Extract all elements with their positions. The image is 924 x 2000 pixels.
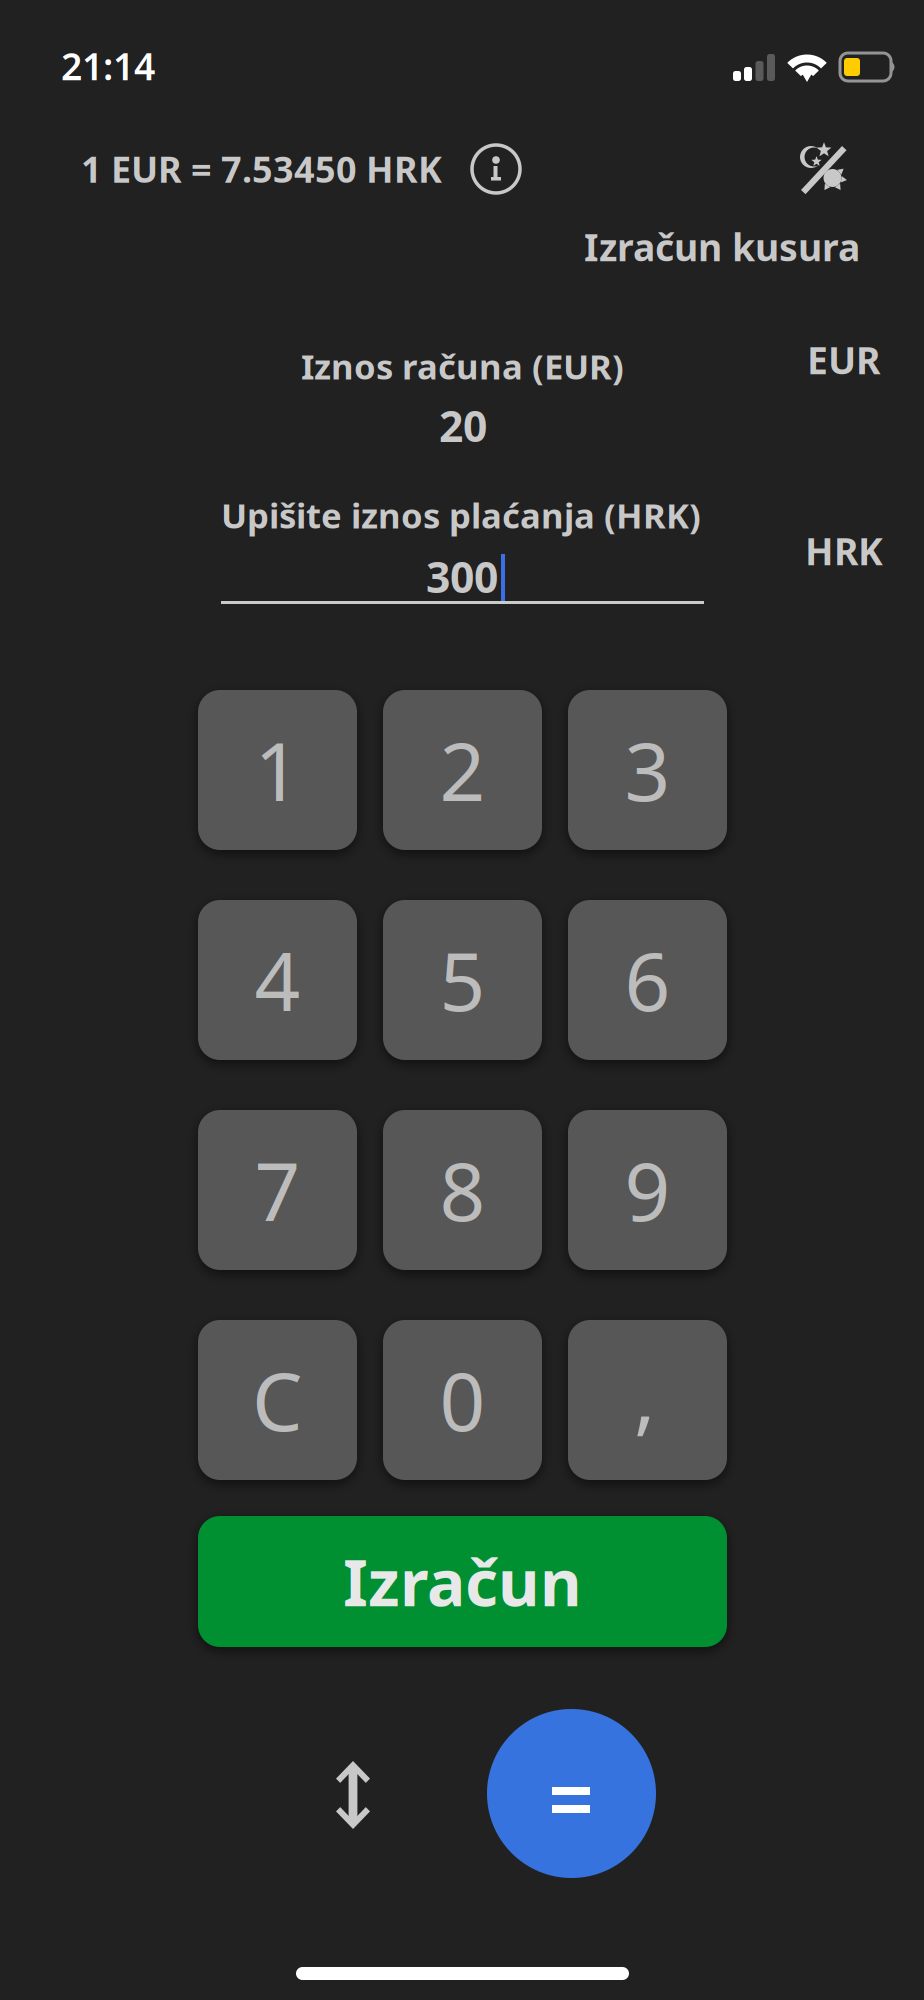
staticText: 8 (439, 1137, 485, 1243)
staticText: EUR (807, 335, 880, 385)
button[interactable]: Swap currencies (336, 1761, 370, 1829)
button[interactable]: 5 (383, 900, 542, 1060)
button[interactable]: 9 (568, 1110, 727, 1270)
staticText: Izračun (343, 1539, 582, 1624)
staticText: Izračun kusura (584, 222, 860, 272)
button[interactable]: Exchange rate info (470, 143, 522, 195)
staticText: 6 (624, 927, 670, 1033)
button[interactable]: 8 (383, 1110, 542, 1270)
staticText: 4 (254, 927, 300, 1033)
staticText: , (634, 1342, 655, 1448)
staticText: 3 (624, 717, 670, 823)
staticText: 21:14 (61, 41, 155, 91)
button[interactable]: 2 (383, 690, 542, 850)
button[interactable]: 6 (568, 900, 727, 1060)
button[interactable]: C (198, 1320, 357, 1480)
staticText: 5 (439, 927, 485, 1033)
staticText: 9 (624, 1137, 670, 1243)
staticText: 300 (426, 548, 498, 605)
button[interactable]: Izračun (198, 1516, 727, 1647)
staticText: 20 (439, 397, 487, 454)
button[interactable]: 4 (198, 900, 357, 1060)
button[interactable]: 7 (198, 1110, 357, 1270)
button[interactable]: 1 (198, 690, 357, 850)
button[interactable]: Equals (487, 1709, 656, 1878)
staticText: 7 (254, 1137, 300, 1243)
staticText: 0 (439, 1347, 485, 1453)
staticText: HRK (805, 526, 883, 576)
staticText: 2 (439, 717, 485, 823)
staticText: Iznos računa (EUR) (301, 343, 624, 389)
staticText: 1 (254, 717, 300, 823)
staticText: 1 EUR = 7.53450 HRK (81, 145, 442, 193)
button[interactable]: Toggle appearance (800, 140, 852, 198)
button[interactable]: 3 (568, 690, 727, 850)
staticText: C (252, 1347, 303, 1453)
staticText: Upišite iznos plaćanja (HRK) (221, 492, 701, 538)
button[interactable]: 0 (383, 1320, 542, 1480)
button[interactable]: , (568, 1320, 727, 1480)
